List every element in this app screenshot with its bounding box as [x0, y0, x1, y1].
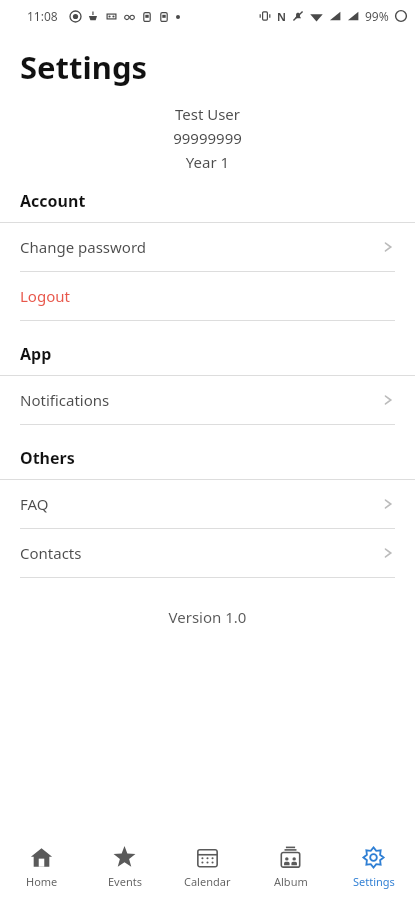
- button[interactable]: Events: [83, 830, 166, 900]
- staticText: Album: [274, 874, 308, 889]
- button[interactable]: Settings: [332, 830, 415, 900]
- staticText: FAQ: [20, 494, 49, 514]
- staticText: Version 1.0: [0, 607, 415, 627]
- button[interactable]: Home: [0, 830, 83, 900]
- button[interactable]: Contacts: [0, 529, 415, 577]
- staticText: Account: [20, 190, 86, 212]
- staticText: Logout: [20, 286, 70, 306]
- button[interactable]: FAQ: [0, 480, 415, 528]
- staticText: Settings: [20, 46, 148, 88]
- button[interactable]: Calendar: [166, 830, 249, 900]
- staticText: 99%: [365, 8, 389, 24]
- staticText: App: [20, 343, 52, 365]
- staticText: Change password: [20, 237, 147, 257]
- staticText: 11:08: [27, 8, 58, 24]
- staticText: Contacts: [20, 543, 82, 563]
- staticText: Test User: [0, 104, 415, 124]
- staticText: N: [277, 9, 286, 24]
- staticText: Events: [108, 874, 142, 889]
- staticText: 99999999: [0, 128, 415, 148]
- staticText: Settings: [353, 874, 395, 889]
- button[interactable]: Change password: [0, 223, 415, 271]
- button[interactable]: Notifications: [0, 376, 415, 424]
- button[interactable]: Album: [249, 830, 332, 900]
- staticText: Notifications: [20, 390, 110, 410]
- staticText: Year 1: [0, 152, 415, 172]
- staticText: Calendar: [184, 874, 231, 889]
- button[interactable]: Logout: [0, 272, 415, 320]
- staticText: Others: [20, 447, 75, 469]
- staticText: Home: [26, 874, 58, 889]
